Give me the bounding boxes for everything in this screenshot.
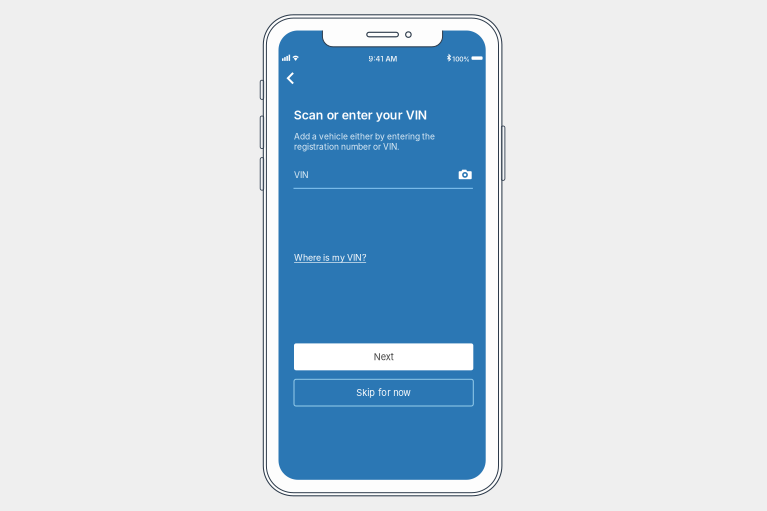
staticText: Skip for now	[356, 387, 411, 398]
staticText: VIN	[294, 170, 309, 180]
staticText: 100%	[452, 55, 470, 63]
button[interactable]: Back	[279, 67, 301, 89]
staticText: Add a vehicle either by entering the reg…	[294, 131, 435, 152]
staticText: Next	[374, 351, 394, 362]
button[interactable]: Next	[294, 343, 473, 370]
staticText: Where is my VIN?	[294, 252, 366, 263]
button[interactable]: Where is my VIN?	[294, 252, 366, 263]
staticText: Scan or enter your VIN	[294, 108, 427, 122]
button[interactable]: Scan VIN with camera	[459, 170, 472, 179]
button[interactable]: Skip for now	[294, 379, 473, 406]
staticText: 9:41 AM	[369, 54, 398, 63]
